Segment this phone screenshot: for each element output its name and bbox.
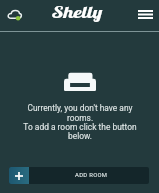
staticText: Shelly [52, 2, 103, 22]
staticText: Currently, you don't have any rooms. To … [23, 103, 137, 141]
button[interactable]: ADD ROOM [9, 167, 149, 184]
staticText: ADD ROOM [75, 172, 108, 179]
button[interactable]: Menu [136, 6, 154, 23]
button[interactable]: Cloud connection status [3, 7, 25, 23]
